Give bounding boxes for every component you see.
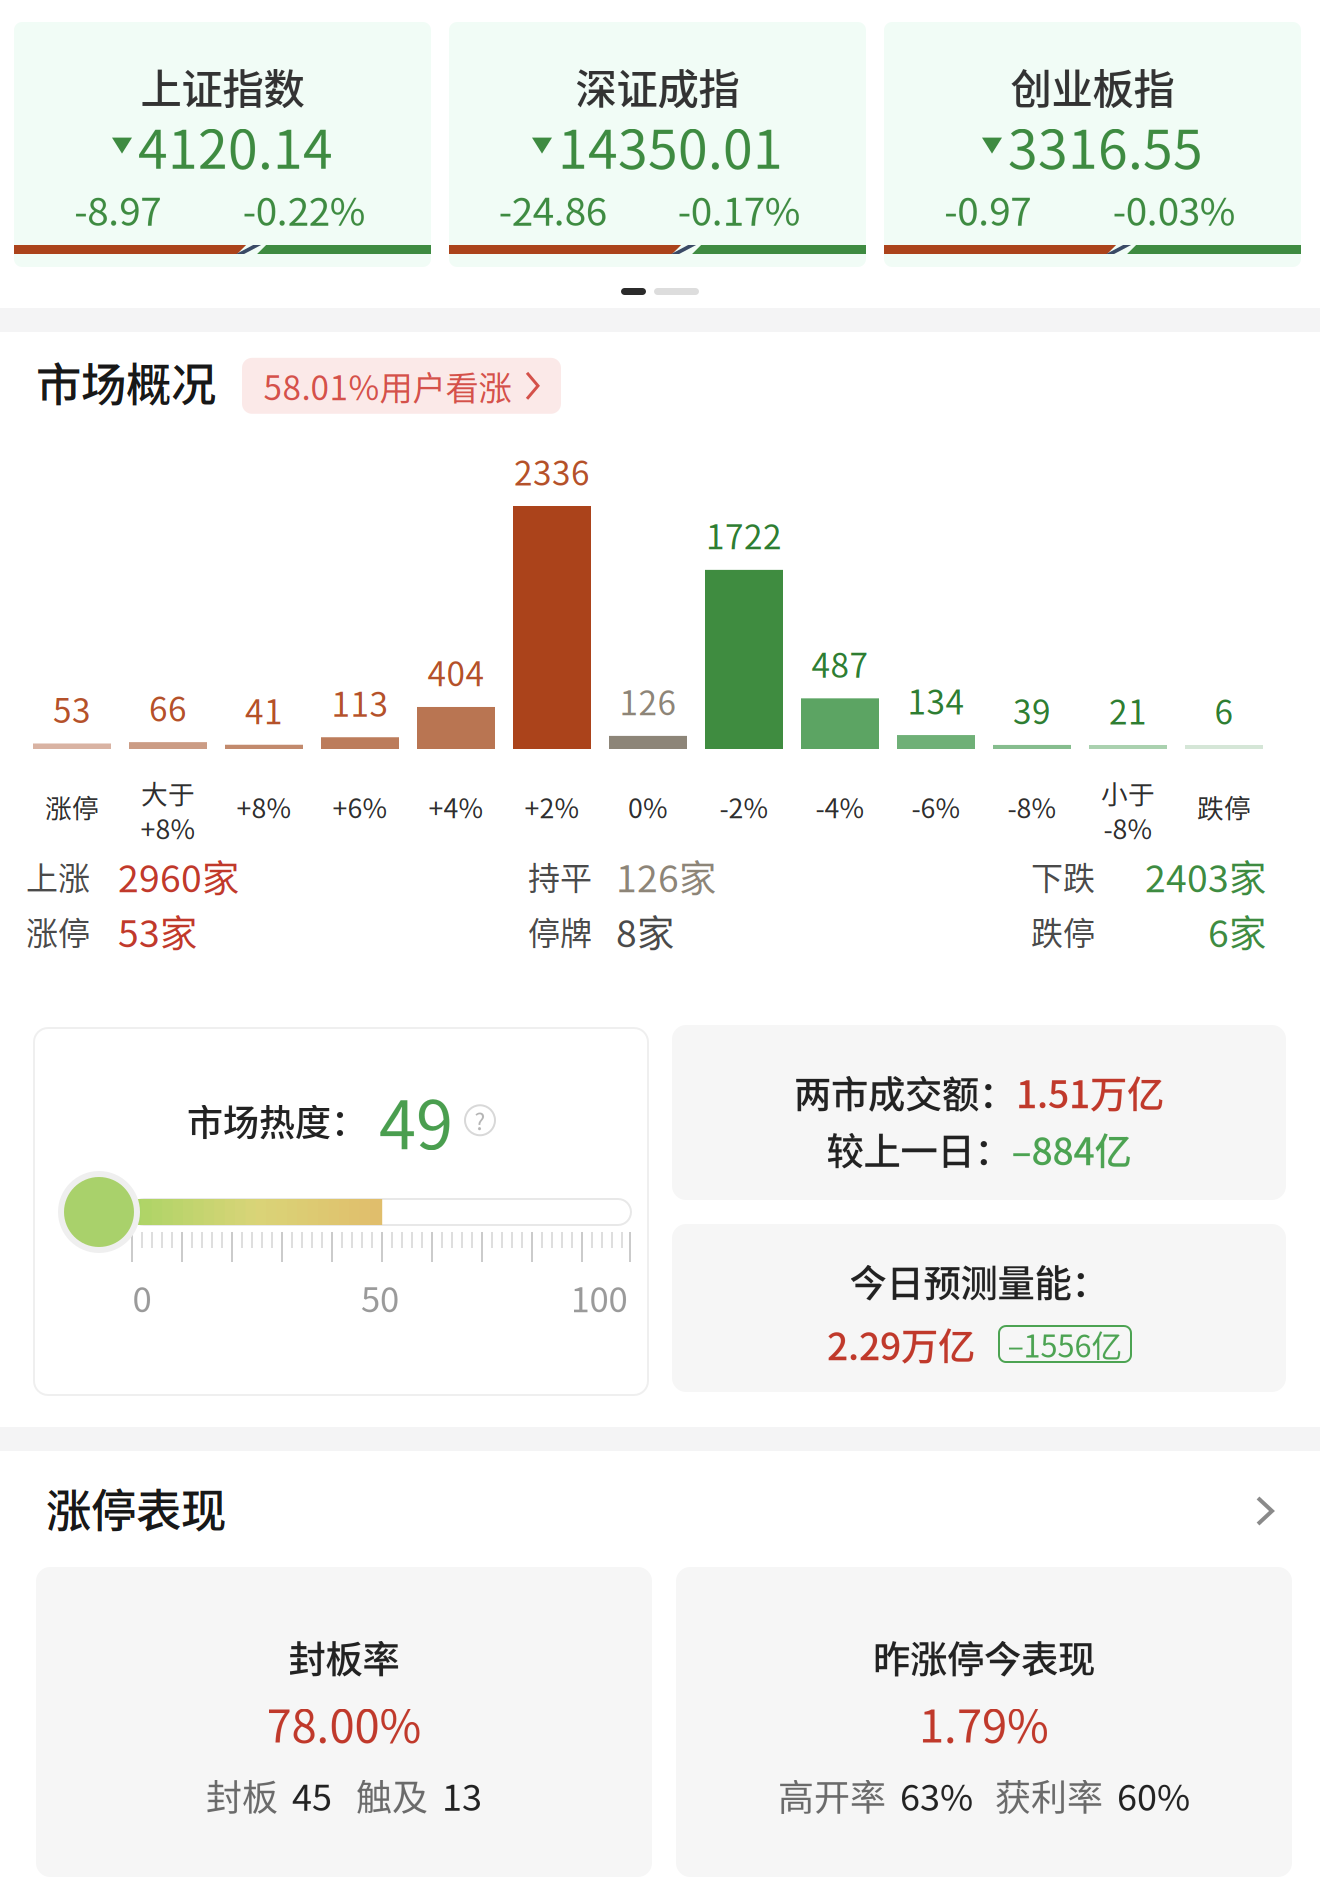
- staticText: 涨停: [26, 908, 90, 954]
- staticText: 下跌: [1031, 853, 1095, 899]
- staticText: -4%: [815, 787, 864, 826]
- staticText: –884亿: [1011, 1122, 1131, 1176]
- staticText: 高开率: [778, 1769, 886, 1821]
- staticText: 134: [907, 676, 964, 724]
- staticText: -24.86: [499, 181, 607, 237]
- staticText: 126家: [616, 849, 716, 903]
- staticText: 1722: [706, 511, 782, 559]
- staticText: 49: [379, 1072, 453, 1168]
- staticText: 13: [442, 1769, 482, 1821]
- staticText: -2%: [719, 787, 768, 826]
- staticText: 市场概况: [36, 349, 216, 415]
- staticText: 4120.14: [138, 107, 333, 184]
- staticText: 3316.55: [1008, 107, 1203, 184]
- staticText: -8%: [1007, 787, 1056, 826]
- button[interactable]: 深证成指: [449, 22, 866, 267]
- staticText: -8%: [1103, 808, 1152, 847]
- staticText: +8%: [140, 808, 195, 847]
- staticText: 上证指数: [140, 56, 304, 116]
- staticText: -0.97: [944, 181, 1031, 237]
- staticText: 404: [427, 648, 484, 696]
- staticText: 41: [245, 685, 283, 734]
- staticText: 深证成指: [575, 56, 739, 116]
- staticText: -0.17%: [678, 181, 801, 237]
- staticText: 53: [53, 684, 91, 732]
- staticText: –1556亿: [1007, 1322, 1122, 1366]
- staticText: 21: [1109, 686, 1147, 734]
- button[interactable]: 58.01%用户看涨: [242, 358, 561, 414]
- staticText: 78.00%: [266, 1690, 421, 1756]
- staticText: +2%: [524, 787, 579, 826]
- staticText: ?: [474, 1104, 485, 1137]
- staticText: 1.51万亿: [1016, 1065, 1164, 1119]
- staticText: 0%: [628, 787, 668, 826]
- staticText: -6%: [911, 787, 960, 826]
- staticText: +6%: [332, 787, 387, 826]
- staticText: 6: [1214, 686, 1233, 734]
- button[interactable]: 查看涨停表现详情: [1242, 1482, 1288, 1540]
- staticText: 获利率: [995, 1769, 1103, 1821]
- staticText: 60%: [1117, 1769, 1190, 1821]
- staticText: 2336: [514, 447, 590, 495]
- staticText: 今日预测量能：: [849, 1254, 1108, 1308]
- staticText: 市场热度：: [187, 1094, 367, 1146]
- button[interactable]: 封板率: [36, 1567, 652, 1877]
- staticText: 8家: [616, 904, 674, 958]
- staticText: 上涨: [26, 853, 90, 899]
- staticText: 53家: [118, 904, 197, 958]
- staticText: 113: [331, 678, 388, 726]
- staticText: 昨涨停今表现: [873, 1630, 1095, 1684]
- staticText: 持平: [528, 853, 592, 899]
- staticText: 45: [292, 1769, 332, 1821]
- staticText: 大于: [141, 773, 195, 812]
- staticText: 0: [132, 1272, 151, 1322]
- staticText: 跌停: [1197, 787, 1251, 826]
- staticText: 126: [619, 677, 676, 725]
- staticText: +8%: [236, 787, 291, 826]
- staticText: 2.29万亿: [827, 1317, 975, 1371]
- staticText: 39: [1013, 686, 1051, 734]
- button[interactable]: 昨涨停今表现: [676, 1567, 1292, 1877]
- staticText: 63%: [900, 1769, 973, 1821]
- staticText: 跌停: [1031, 908, 1095, 954]
- staticText: 较上一日：: [826, 1122, 1011, 1176]
- staticText: 2960家: [118, 849, 239, 903]
- staticText: 涨停: [45, 787, 99, 826]
- staticText: 14350.01: [558, 107, 783, 184]
- staticText: -0.22%: [243, 181, 366, 237]
- staticText: 2403家: [1145, 849, 1266, 903]
- staticText: 创业板指: [1010, 56, 1174, 116]
- staticText: +4%: [428, 787, 483, 826]
- staticText: 触及: [356, 1769, 428, 1821]
- staticText: 100: [570, 1272, 627, 1322]
- staticText: 两市成交额：: [794, 1065, 1016, 1119]
- staticText: 66: [149, 683, 187, 731]
- staticText: -0.03%: [1113, 181, 1236, 237]
- staticText: 6家: [1208, 904, 1266, 958]
- staticText: 1.79%: [919, 1690, 1049, 1756]
- staticText: 封板率: [288, 1630, 399, 1684]
- staticText: 58.01%用户看涨: [263, 362, 511, 410]
- staticText: 停牌: [528, 908, 592, 954]
- staticText: -8.97: [74, 181, 161, 237]
- staticText: 487: [811, 639, 868, 687]
- staticText: 封板: [206, 1769, 278, 1821]
- button[interactable]: 上证指数: [14, 22, 431, 267]
- button[interactable]: 创业板指: [884, 22, 1301, 267]
- staticText: 50: [361, 1272, 399, 1322]
- staticText: 小于: [1101, 773, 1155, 812]
- staticText: 涨停表现: [46, 1475, 226, 1541]
